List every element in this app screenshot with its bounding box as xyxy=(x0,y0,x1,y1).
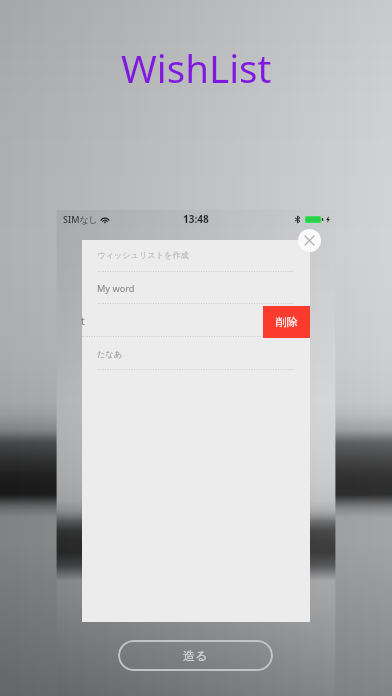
staticText: t xyxy=(81,314,85,328)
staticText: WishList xyxy=(121,42,272,94)
staticText: たなあ xyxy=(97,349,123,359)
button[interactable]: ウィッシュリストを作成 xyxy=(97,250,325,260)
staticText: SIMなし xyxy=(63,213,98,225)
staticText: 削除 xyxy=(276,315,298,329)
button[interactable]: たなあ xyxy=(97,349,325,359)
button[interactable]: 造る xyxy=(118,640,273,671)
staticText: 造る xyxy=(183,648,208,663)
staticText: ウィッシュリストを作成 xyxy=(97,250,189,260)
staticText: My word xyxy=(97,282,135,295)
button[interactable]: 削除 xyxy=(263,306,310,338)
staticText: 13:48 xyxy=(183,212,209,226)
button[interactable]: My word xyxy=(97,282,325,295)
button[interactable]: Close xyxy=(298,229,321,252)
